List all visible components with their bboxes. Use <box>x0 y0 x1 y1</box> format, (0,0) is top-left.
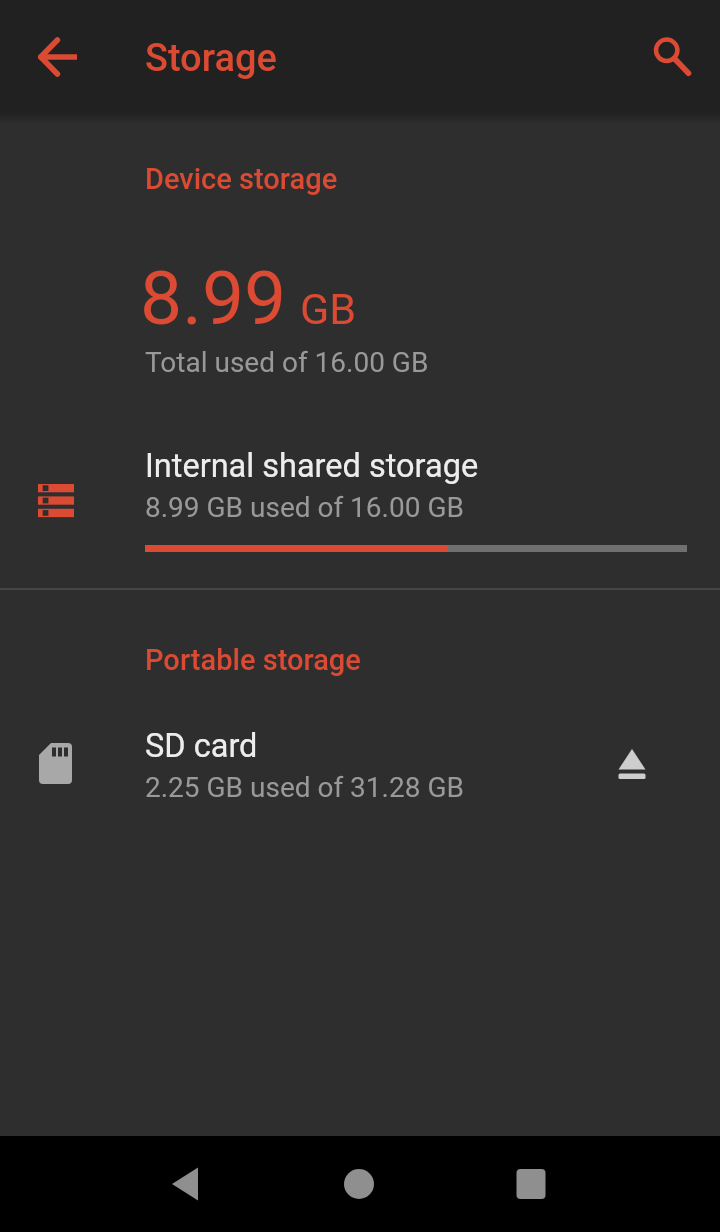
staticText: 8.99 GB used of 16.00 GB <box>145 491 464 524</box>
staticText: 2.25 GB used of 31.28 GB <box>145 771 464 804</box>
button[interactable] <box>471 1136 591 1232</box>
button[interactable] <box>32 33 80 81</box>
staticText: Internal shared storage <box>145 447 479 485</box>
button[interactable] <box>299 1136 419 1232</box>
button[interactable] <box>644 31 692 79</box>
staticText: Device storage <box>145 162 338 196</box>
button[interactable]: SD card <box>0 702 720 822</box>
button[interactable]: Internal shared storage <box>0 432 720 588</box>
button[interactable] <box>608 740 656 788</box>
staticText: 8.99 <box>140 254 287 342</box>
staticText: Portable storage <box>145 643 361 677</box>
staticText: Storage <box>145 36 277 81</box>
staticText: GB <box>300 284 357 334</box>
staticText: Total used of 16.00 GB <box>145 346 429 379</box>
button[interactable] <box>125 1136 245 1232</box>
staticText: SD card <box>145 727 258 765</box>
